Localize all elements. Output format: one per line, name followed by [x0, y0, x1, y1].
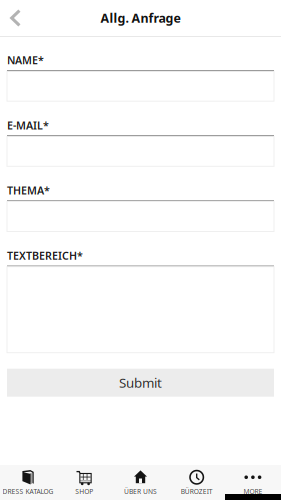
- staticText: MORE: [243, 487, 262, 496]
- staticText: TEXTBEREICH*: [7, 248, 83, 263]
- button[interactable]: ÜBER UNS: [112, 465, 169, 500]
- button[interactable]: Submit: [7, 369, 274, 397]
- staticText: Submit: [119, 374, 162, 391]
- staticText: E-MAIL*: [7, 118, 49, 132]
- staticText: BÜROZEIT: [181, 487, 213, 496]
- button[interactable]: BÜROZEIT: [169, 465, 225, 500]
- button[interactable]: DRESS KATALOG: [0, 465, 56, 500]
- button[interactable]: SHOP: [56, 465, 112, 500]
- staticText: Allg. Anfrage: [100, 10, 180, 26]
- staticText: ÜBER UNS: [124, 487, 157, 496]
- staticText: NAME*: [7, 53, 44, 67]
- button[interactable]: MORE: [225, 465, 281, 500]
- staticText: THEMA*: [7, 183, 50, 197]
- button[interactable]: Back: [0, 1, 29, 35]
- staticText: SHOP: [75, 487, 93, 496]
- staticText: DRESS KATALOG: [3, 487, 54, 496]
